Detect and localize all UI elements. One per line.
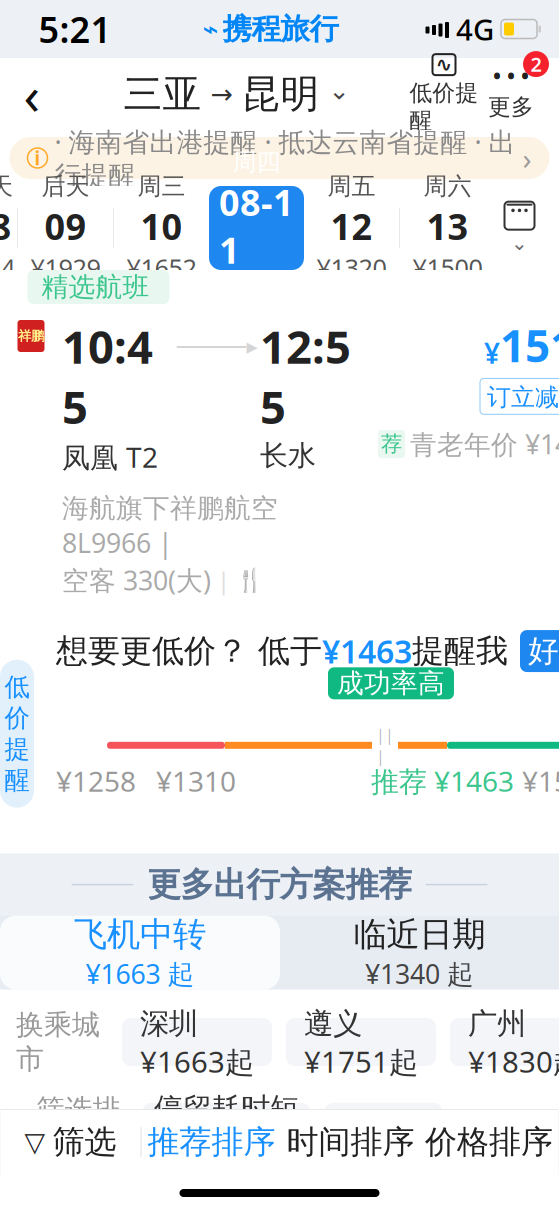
staticText: 成功率高 xyxy=(337,667,445,700)
button[interactable]: 广州 ¥1830起 xyxy=(450,1018,559,1066)
staticText: · 海南省出港提醒 · 抵达云南省提醒 · 出行提醒 xyxy=(54,124,515,192)
button[interactable]: 周六 xyxy=(400,186,495,270)
staticText: 08-11 xyxy=(219,178,294,274)
staticText: ¥1320 xyxy=(316,251,386,284)
staticText: 8 xyxy=(0,202,11,250)
staticText: 遵义 ¥1751起 xyxy=(304,1003,418,1081)
button[interactable]: 转 xyxy=(0,1181,559,1209)
button[interactable]: 推荐排序 xyxy=(141,1109,281,1175)
staticText: 周六 xyxy=(423,171,471,201)
staticText: 4G xyxy=(456,9,494,48)
staticText: 青老年价 ¥1470 xyxy=(410,426,559,462)
staticText: 临近日期 xyxy=(353,914,485,955)
button[interactable]: 临近日期 xyxy=(280,916,559,990)
staticText: › xyxy=(522,138,531,177)
staticText: ▶ xyxy=(246,339,257,355)
staticText: 精选航班 xyxy=(41,271,149,303)
staticText: 推荐 ¥1463 xyxy=(371,762,514,799)
staticText: ¥ xyxy=(484,334,500,371)
staticText: ¥1310 xyxy=(156,762,236,799)
staticText: ¥1510 xyxy=(522,762,559,799)
button[interactable]: 精选航班 xyxy=(0,270,559,614)
button[interactable]: 周四 xyxy=(209,186,304,270)
button[interactable]: ∿ xyxy=(409,53,479,135)
staticText: 昆明 xyxy=(241,70,319,118)
button[interactable]: 三亚 xyxy=(113,62,359,126)
staticText: ∿ xyxy=(435,53,452,76)
staticText: 2 xyxy=(530,51,541,77)
staticText: 换乘城市 xyxy=(16,1008,100,1076)
button[interactable]: 时间排序 xyxy=(281,1109,419,1175)
staticText: 时间排序 xyxy=(286,1122,414,1162)
staticText: 价格排序 xyxy=(425,1122,553,1162)
staticText: • • • xyxy=(493,62,529,90)
staticText: 09 xyxy=(44,202,86,250)
staticText: 13 xyxy=(426,202,468,250)
staticText: 低价提醒 xyxy=(409,79,478,135)
button[interactable]: 飞机中转 xyxy=(0,916,280,990)
staticText: 长水 xyxy=(260,438,316,473)
staticText: 订立减 ¥5 xyxy=(487,380,559,412)
staticText: ||| xyxy=(376,724,394,767)
staticText: 12 xyxy=(330,202,372,250)
staticText: 更多 xyxy=(488,93,534,121)
staticText: ¥1463 xyxy=(322,630,412,672)
button[interactable]: 日历 xyxy=(480,186,559,270)
button[interactable]: 后天 xyxy=(18,186,113,270)
staticText: 筛选排序 xyxy=(36,1092,120,1161)
staticText: ‹ xyxy=(23,59,40,129)
staticText: 推荐排序 xyxy=(147,1122,275,1162)
staticText: 低价提醒 xyxy=(4,671,29,796)
staticText: 1510 xyxy=(500,316,559,374)
staticText: 好的 xyxy=(528,632,559,670)
staticText: 后天 xyxy=(41,171,89,201)
button[interactable]: 航变无忧 xyxy=(324,1103,442,1151)
staticText: 三亚 xyxy=(123,70,201,118)
staticText: 5:21 xyxy=(38,5,111,53)
staticText: 🍴 xyxy=(236,567,264,593)
staticText: ¥1652 xyxy=(126,251,196,284)
staticText: 10 xyxy=(140,202,182,250)
button[interactable]: 深圳 ¥1663起 xyxy=(122,1018,272,1066)
staticText: ⌁ xyxy=(202,14,218,44)
button[interactable]: 周三 xyxy=(114,186,209,270)
staticText: 天 xyxy=(0,171,13,201)
button[interactable]: 停留耗时短优先 xyxy=(142,1103,310,1151)
staticText: ¥1929 xyxy=(30,251,100,284)
staticText: 周四 xyxy=(232,148,280,177)
button[interactable]: 天 xyxy=(0,186,17,270)
staticText: ¥1340 起 xyxy=(365,956,474,991)
staticText: 周五 xyxy=(327,171,375,201)
staticText: 12:55 xyxy=(260,316,351,436)
staticText: 荐 xyxy=(381,431,402,457)
staticText: 海航旗下祥鹏航空 8L9966 | xyxy=(62,490,278,560)
staticText: ¥1258 xyxy=(56,762,136,799)
staticText: 想要更低价？ 低于 xyxy=(56,631,322,671)
staticText: 广州 ¥1830起 xyxy=(468,1003,559,1081)
staticText: ⌄ xyxy=(511,232,528,254)
button[interactable]: i xyxy=(9,137,549,179)
button[interactable]: ▽ xyxy=(0,1109,140,1175)
staticText: ▽ xyxy=(24,1127,45,1157)
button[interactable]: 周五 xyxy=(304,186,399,270)
staticText: | xyxy=(217,564,230,596)
staticText: → xyxy=(210,79,232,109)
staticText: 携程旅行 xyxy=(222,11,338,47)
button[interactable]: 遵义 ¥1751起 xyxy=(286,1018,436,1066)
staticText: ⌄ xyxy=(328,76,349,105)
staticText: 提醒我 xyxy=(412,631,508,671)
staticText: 停留耗时短优先 xyxy=(154,1091,299,1163)
button[interactable]: 返回 xyxy=(0,62,64,126)
staticText: 空客 330(大) xyxy=(62,562,211,598)
button[interactable]: 价格排序 xyxy=(419,1109,558,1175)
button[interactable]: 好的 xyxy=(520,630,559,672)
staticText: 10:45 xyxy=(62,316,153,436)
staticText: 更多出行方案推荐 xyxy=(147,864,411,905)
button[interactable]: • • • xyxy=(479,67,559,121)
staticText: 34 xyxy=(0,251,15,284)
